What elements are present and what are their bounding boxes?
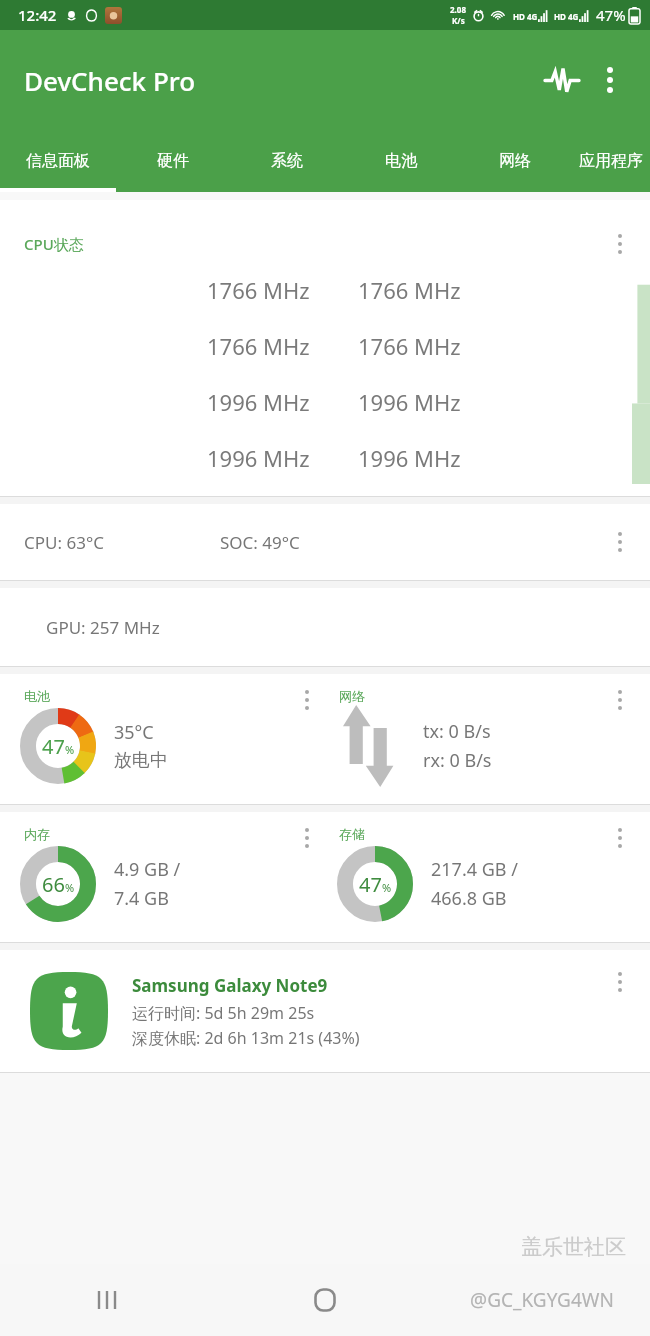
button[interactable]: Monitor xyxy=(538,56,586,104)
staticText: 4G xyxy=(527,11,538,22)
button[interactable]: Samsung Galaxy Note9 xyxy=(0,950,650,1072)
button[interactable]: Card menu xyxy=(602,820,638,856)
staticText: CPU: 63°C xyxy=(24,531,104,554)
staticText: 35°C xyxy=(114,720,154,745)
staticText: 7.4 GB xyxy=(114,886,169,911)
button[interactable]: 硬件 xyxy=(116,130,230,192)
button[interactable]: Home xyxy=(216,1264,433,1336)
staticText: 1996 MHz xyxy=(207,387,310,417)
button[interactable]: Recents xyxy=(0,1264,216,1336)
staticText: % xyxy=(65,742,75,757)
button[interactable]: 系统 xyxy=(230,130,344,192)
staticText: 466.8 GB xyxy=(431,886,507,911)
staticText: 66 xyxy=(42,871,65,898)
staticText: 网络 xyxy=(339,688,365,704)
staticText: rx: 0 B/s xyxy=(423,748,492,773)
button[interactable]: Card menu xyxy=(602,964,638,1000)
staticText: 盖乐世社区 xyxy=(521,1234,626,1260)
staticText: 1996 MHz xyxy=(358,387,461,417)
staticText: 放电中 xyxy=(114,749,168,772)
button[interactable]: Card menu xyxy=(602,524,638,560)
staticText: 47% xyxy=(596,5,626,25)
button[interactable]: Card menu xyxy=(289,682,325,718)
staticText: GPU: 257 MHz xyxy=(46,616,160,639)
staticText: 电池 xyxy=(24,688,50,704)
staticText: CPU状态 xyxy=(24,234,84,254)
button[interactable]: 网络 xyxy=(325,674,650,804)
staticText: 12:42 xyxy=(18,5,57,25)
button[interactable]: Card menu xyxy=(602,682,638,718)
staticText: DevCheck Pro xyxy=(24,63,196,98)
staticText: 4G xyxy=(568,11,579,22)
staticText: 硬件 xyxy=(157,151,189,171)
button[interactable]: CPU: 63°C xyxy=(0,504,650,580)
button[interactable]: More options xyxy=(586,56,634,104)
staticText: HD xyxy=(554,11,566,22)
staticText: 47 xyxy=(42,733,65,760)
button[interactable]: 电池 xyxy=(0,674,325,804)
staticText: 1996 MHz xyxy=(358,443,461,473)
button[interactable]: 网络 xyxy=(458,130,572,192)
button[interactable]: 内存 xyxy=(0,812,325,942)
button[interactable]: 存储 xyxy=(325,812,650,942)
button[interactable]: GPU: 257 MHz xyxy=(0,588,650,666)
button[interactable]: Card menu xyxy=(602,226,638,262)
staticText: SOC: 49°C xyxy=(220,531,300,554)
staticText: 1766 MHz xyxy=(358,331,461,361)
staticText: 网络 xyxy=(499,151,531,171)
button[interactable]: 应用程序 xyxy=(572,130,650,192)
staticText: 深度休眠: 2d 6h 13m 21s (43%) xyxy=(132,1027,360,1049)
staticText: 内存 xyxy=(24,826,50,842)
staticText: 2.08 xyxy=(450,4,466,15)
staticText: 1996 MHz xyxy=(207,443,310,473)
staticText: 217.4 GB / xyxy=(431,857,518,882)
staticText: % xyxy=(65,880,75,895)
staticText: 应用程序 xyxy=(579,151,643,171)
staticText: % xyxy=(382,880,392,895)
staticText: 信息面板 xyxy=(26,151,90,171)
staticText: @GC_KGYG4WN xyxy=(470,1287,614,1313)
button[interactable]: 信息面板 xyxy=(0,130,116,192)
staticText: 系统 xyxy=(271,151,303,171)
button[interactable]: Card menu xyxy=(289,820,325,856)
staticText: Samsung Galaxy Note9 xyxy=(132,974,328,997)
staticText: HD xyxy=(513,11,525,22)
staticText: 存储 xyxy=(339,826,365,842)
staticText: 运行时间: 5d 5h 29m 25s xyxy=(132,1002,315,1024)
staticText: tx: 0 B/s xyxy=(423,719,491,744)
staticText: 1766 MHz xyxy=(358,275,461,305)
staticText: 1766 MHz xyxy=(207,275,310,305)
staticText: 电池 xyxy=(385,151,417,171)
staticText: 1766 MHz xyxy=(207,331,310,361)
button[interactable]: CPU状态 xyxy=(0,200,650,496)
staticText: K/s xyxy=(452,15,465,26)
button[interactable]: 电池 xyxy=(344,130,458,192)
staticText: 47 xyxy=(359,871,382,898)
staticText: 4.9 GB / xyxy=(114,857,181,882)
